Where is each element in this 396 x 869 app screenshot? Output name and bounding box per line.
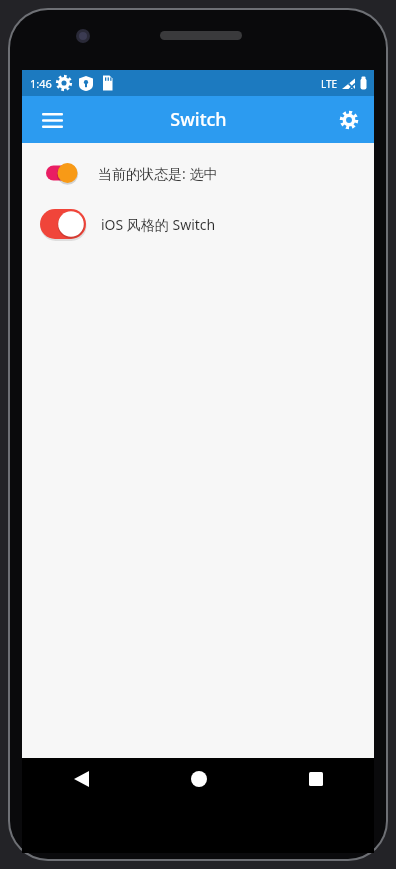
staticText: iOS 风格的 Switch: [101, 215, 216, 234]
staticText: Switch: [170, 107, 227, 132]
staticText: LTE: [321, 77, 338, 91]
staticText: 1:46: [30, 76, 52, 91]
button[interactable]: Settings: [330, 101, 368, 139]
button[interactable]: Home: [140, 758, 257, 800]
button[interactable]: iOS 风格的 Switch: [22, 202, 374, 246]
button[interactable]: Recent apps: [257, 758, 374, 800]
staticText: 当前的状态是: 选中: [98, 164, 218, 183]
button[interactable]: Open navigation menu: [34, 102, 70, 138]
button[interactable]: Back: [22, 758, 140, 800]
button[interactable]: 当前的状态是: 选中: [22, 151, 374, 195]
